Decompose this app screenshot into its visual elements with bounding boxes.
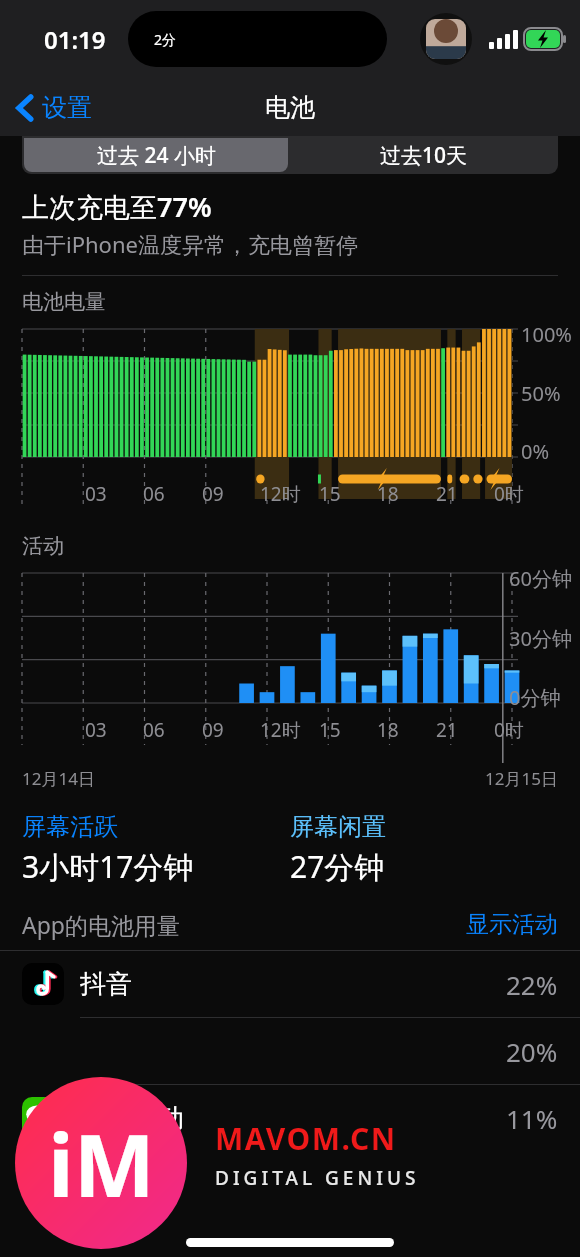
staticText: 电池	[265, 92, 315, 123]
staticText: 60分钟	[509, 565, 572, 592]
button[interactable]: 过去10天	[290, 136, 558, 174]
staticText: 03	[85, 481, 107, 507]
button[interactable]: 抖音	[0, 951, 580, 1017]
staticText: 0分钟	[509, 684, 561, 711]
staticText: 21	[436, 717, 458, 743]
staticText: 电池电量	[22, 289, 106, 315]
staticText: 0时	[494, 717, 524, 743]
button[interactable]: 后台活动	[0, 1085, 580, 1151]
staticText: 09	[202, 481, 224, 507]
button[interactable]: 过去 24 小时	[24, 138, 288, 172]
staticText: 12月15日	[485, 767, 558, 790]
staticText: 50%	[521, 380, 561, 407]
staticText: 06	[143, 481, 165, 507]
staticText: 11%	[506, 1101, 558, 1136]
staticText: 03	[85, 717, 107, 743]
staticText: 屏幕活跃	[22, 812, 118, 842]
staticText: 抖音	[80, 968, 132, 1001]
staticText: 3小时17分钟	[22, 846, 194, 887]
button[interactable]: 设置	[12, 88, 96, 127]
staticText: 设置	[42, 92, 92, 123]
staticText: App的电池用量	[22, 909, 180, 940]
staticText: 18	[377, 481, 399, 507]
staticText: 显示活动	[466, 910, 558, 939]
staticText: 22%	[506, 967, 558, 1002]
staticText: 30分钟	[509, 625, 572, 652]
staticText: 09	[202, 717, 224, 743]
staticText: 20%	[506, 1034, 558, 1069]
staticText: 21	[436, 481, 458, 507]
staticText: iM	[48, 1105, 155, 1222]
staticText: 2分	[154, 30, 177, 49]
staticText: 上次充电至77%	[22, 188, 212, 225]
staticText: 过去 24 小时	[97, 141, 216, 170]
staticText: 100%	[521, 321, 572, 348]
staticText: 0%	[521, 438, 550, 465]
staticText: 01:19	[44, 23, 106, 56]
button[interactable]: 20%	[0, 1018, 580, 1084]
staticText: MAVOM.CN	[215, 1118, 397, 1159]
button[interactable]: 显示活动	[466, 910, 558, 939]
staticText: 0时	[494, 481, 524, 507]
staticText: 12月14日	[22, 767, 95, 790]
staticText: DIGITAL GENIUS	[215, 1165, 420, 1191]
staticText: 由于iPhone温度异常，充电曾暂停	[22, 229, 358, 259]
staticText: 06	[143, 717, 165, 743]
staticText: 12时	[260, 481, 301, 507]
staticText: 过去10天	[380, 141, 468, 170]
staticText: 15	[319, 481, 341, 507]
staticText: 12时	[260, 717, 301, 743]
staticText: 18	[377, 717, 399, 743]
staticText: 27分钟	[290, 846, 385, 887]
staticText: 后台活动	[80, 1102, 184, 1135]
staticText: 活动	[22, 533, 64, 559]
staticText: 屏幕闲置	[290, 812, 386, 842]
staticText: 15	[319, 717, 341, 743]
